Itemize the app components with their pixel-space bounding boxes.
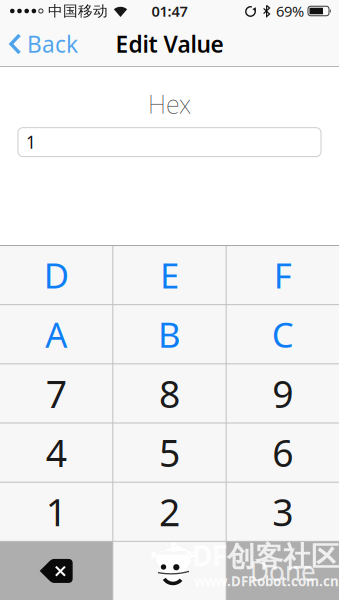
button[interactable]: 2 [113,483,226,541]
staticText: 中国移动 [48,2,108,20]
button[interactable]: 6 [227,423,339,482]
button[interactable]: C [227,305,339,363]
staticText: F [274,252,292,298]
button[interactable]: 8 [113,364,226,422]
button[interactable]: Delete [0,542,112,600]
staticText: 01:47 [151,1,187,21]
staticText: 7 [46,369,67,418]
staticText: DF创客社区 [192,537,339,574]
staticText: 1 [46,487,67,537]
button[interactable]: Done [227,542,339,600]
staticText: 9 [272,369,293,418]
staticText: 1 [26,131,36,154]
button[interactable]: Hex value [0,128,339,157]
staticText: A [45,311,67,357]
button[interactable]: 7 [0,364,112,422]
button[interactable]: 5 [113,423,226,482]
staticText: 69% [276,1,304,21]
staticText: www.DFRobot.com.cn [194,572,339,590]
button[interactable]: B [113,305,226,363]
staticText: 6 [272,428,293,477]
button[interactable]: 1 [0,483,112,541]
staticText: Hex [148,87,191,121]
staticText: E [160,252,179,298]
button[interactable]: A [0,305,112,363]
button[interactable]: 3 [227,483,339,541]
button[interactable]: 0 [113,542,226,600]
button[interactable]: 4 [0,423,112,482]
staticText: Edit Value [115,29,223,59]
button[interactable]: 9 [227,364,339,422]
button[interactable]: D [0,246,112,304]
staticText: 4 [46,428,67,477]
staticText: C [272,311,294,357]
button[interactable]: F [227,246,339,304]
staticText: B [158,311,181,357]
staticText: Back [27,29,78,59]
staticText: 3 [272,487,293,537]
button[interactable]: Back [0,29,78,59]
staticText: 5 [159,428,180,477]
staticText: D [44,252,69,298]
button[interactable]: E [113,246,226,304]
staticText: 8 [159,369,180,418]
staticText: 2 [159,487,180,537]
staticText: Done [250,553,316,589]
